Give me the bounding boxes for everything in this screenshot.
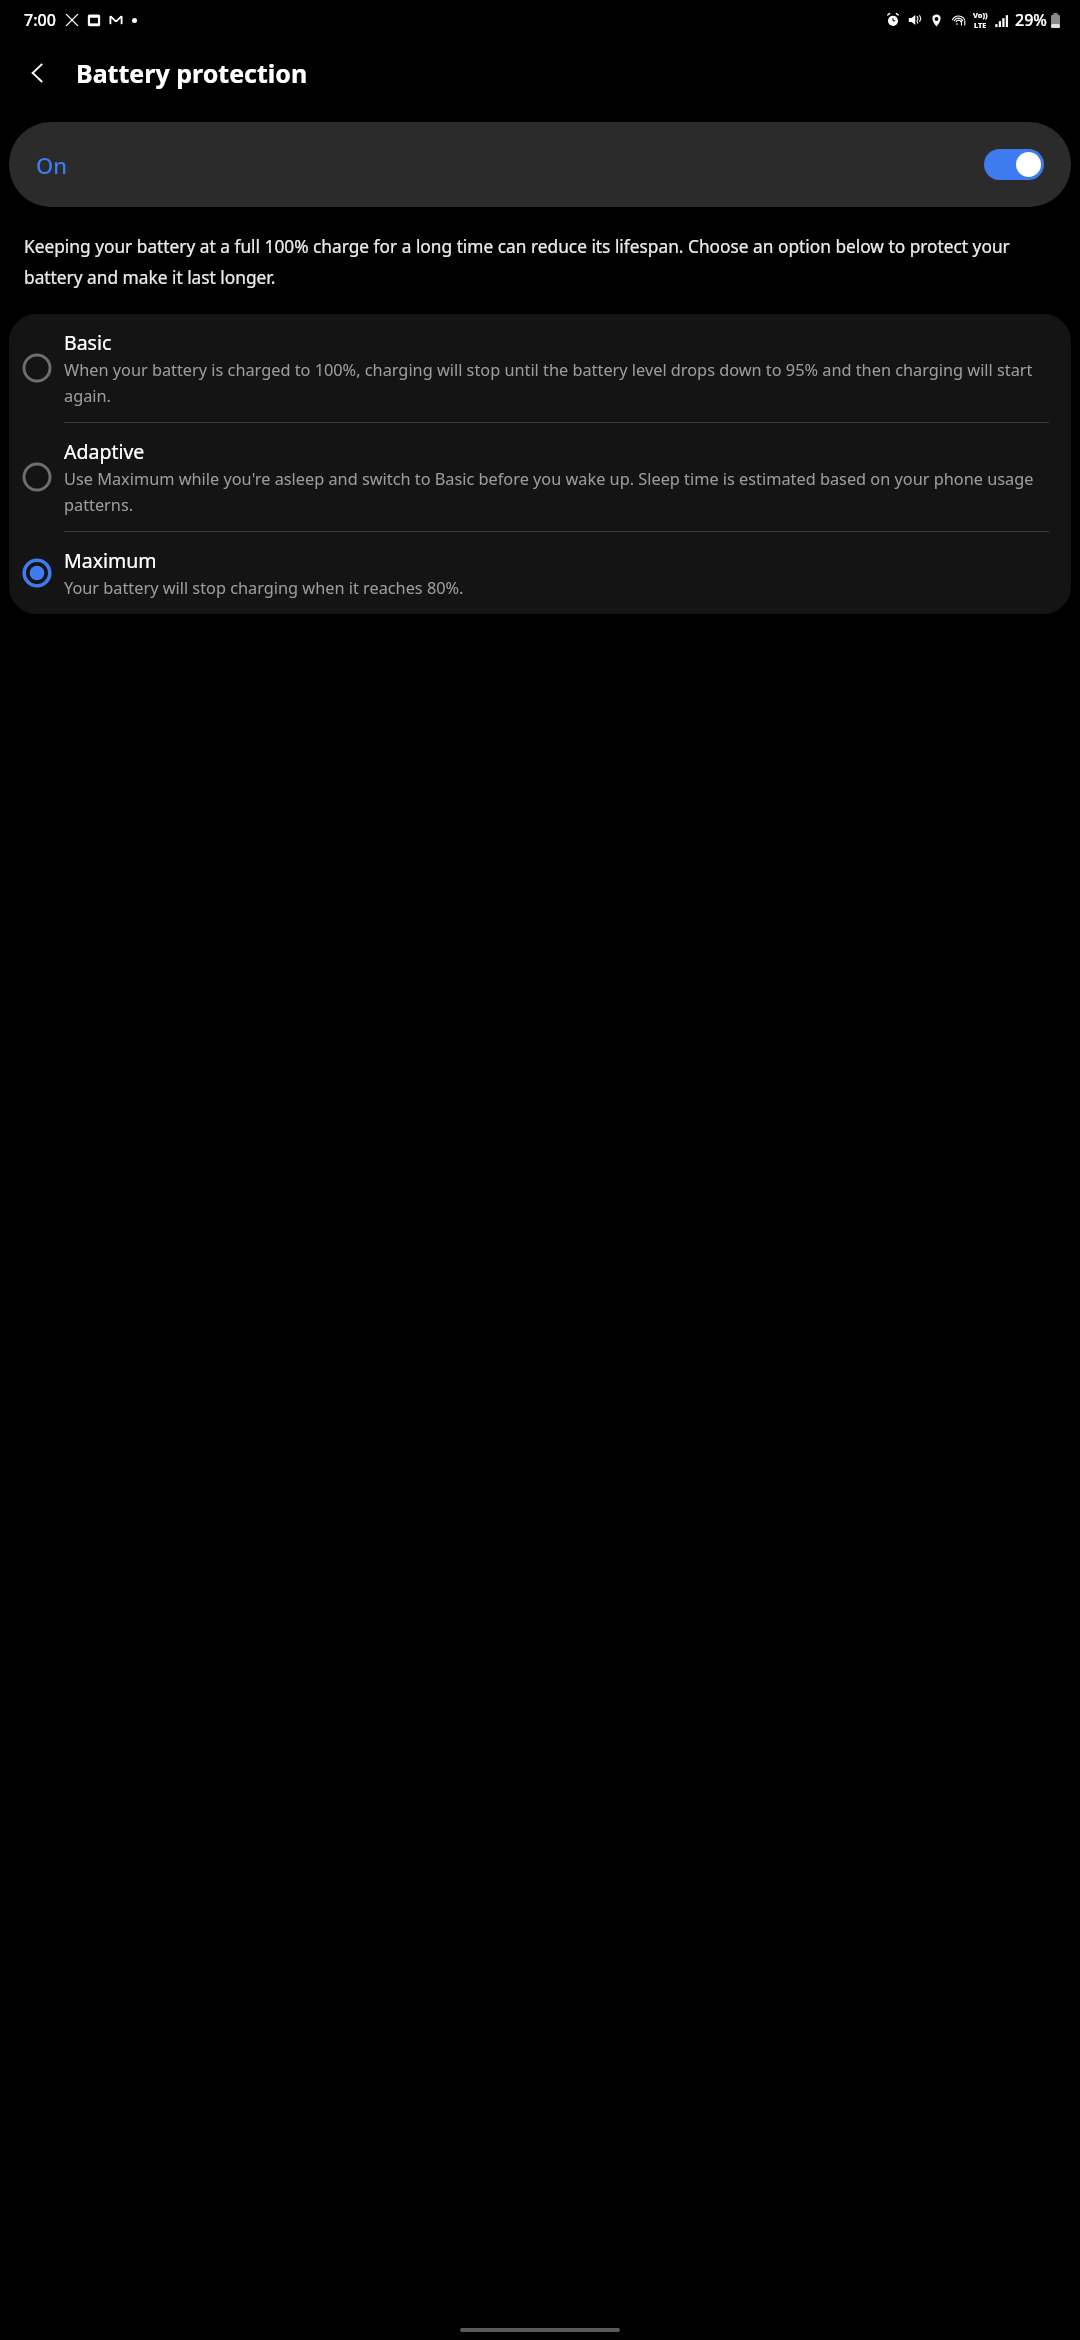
staticText: 29% [1015, 9, 1047, 31]
staticText: Vo)) [973, 10, 988, 20]
staticText: On [36, 150, 68, 180]
button[interactable]: Maximum [9, 532, 1071, 614]
staticText: Battery protection [76, 56, 308, 90]
staticText: Your battery will stop charging when it … [64, 577, 464, 599]
staticText: Keeping your battery at a full 100% char… [24, 235, 1058, 289]
staticText: 7:00 [24, 9, 56, 31]
staticText: When your battery is charged to 100%, ch… [64, 359, 1057, 407]
staticText: Maximum [64, 547, 157, 574]
staticText: Use Maximum while you're asleep and swit… [64, 468, 1057, 516]
staticText: Adaptive [64, 438, 145, 465]
button[interactable]: Basic [9, 314, 1071, 422]
staticText: LTE [974, 20, 987, 30]
button[interactable]: Adaptive [9, 423, 1071, 531]
button[interactable]: On [9, 122, 1071, 207]
staticText: Basic [64, 329, 112, 356]
button[interactable]: Back [14, 49, 62, 97]
